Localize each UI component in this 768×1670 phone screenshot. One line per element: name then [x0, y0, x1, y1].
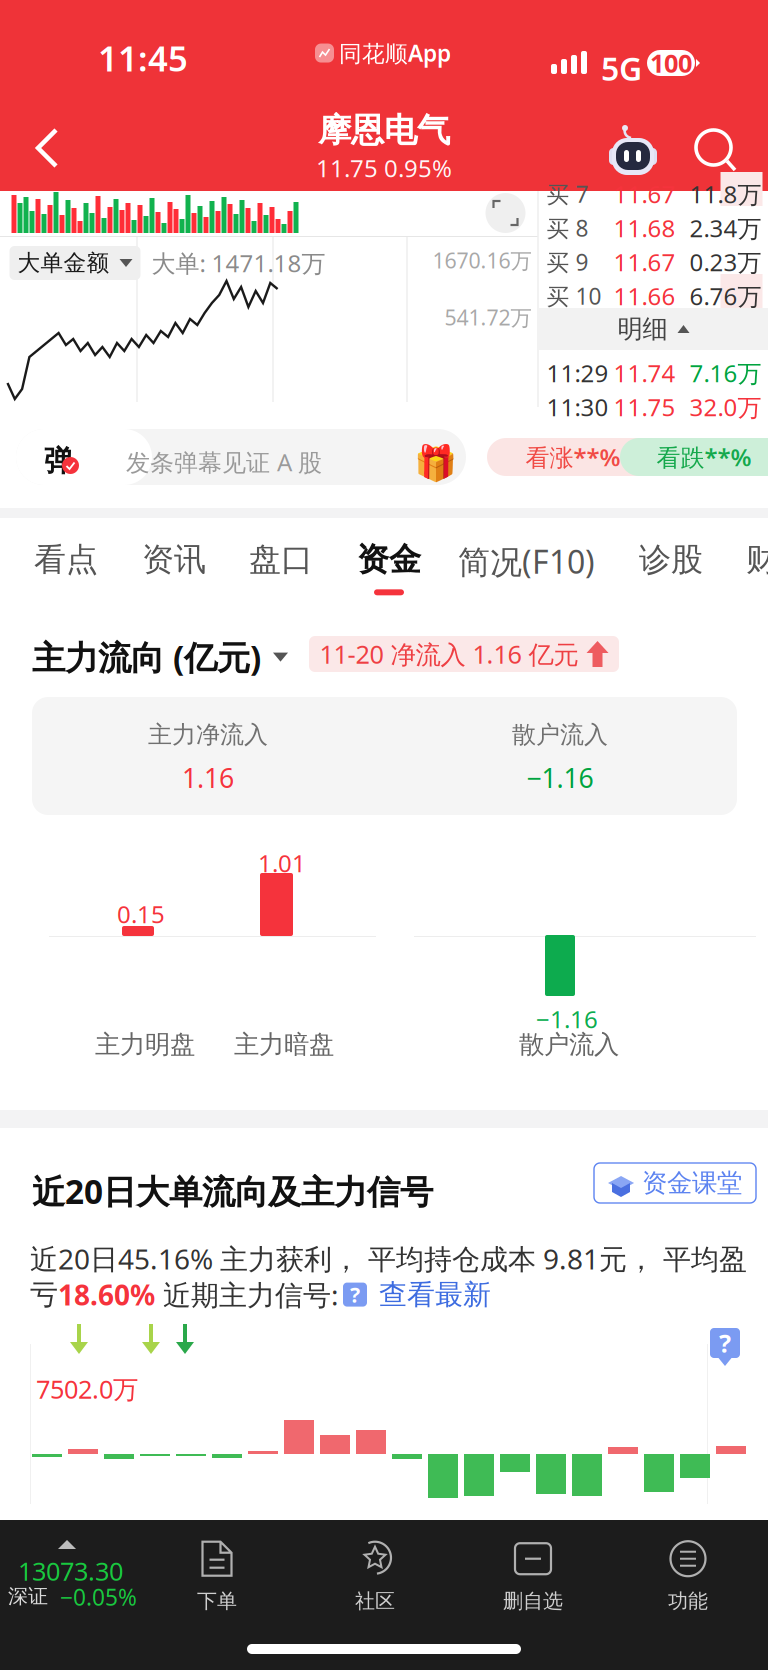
staticText: 11.75 0.95% — [316, 152, 452, 184]
staticText: 2.34万 — [689, 212, 761, 244]
button[interactable]: 资讯 — [136, 530, 212, 605]
button[interactable]: 11-20 净流入 1.16 亿元 — [309, 636, 619, 672]
staticText: 明细 — [617, 313, 667, 344]
button[interactable]: 看点 — [28, 530, 104, 605]
staticText: 1.16 — [182, 760, 234, 795]
staticText: 看跌**% — [656, 441, 751, 473]
button[interactable]: 智能助手 — [609, 124, 657, 176]
staticText: −0.05% — [60, 1582, 137, 1612]
staticText: 13073.30 — [18, 1554, 123, 1588]
button[interactable]: 社区 — [300, 1532, 450, 1620]
staticText: 买 7 — [546, 179, 588, 209]
button[interactable]: 主力流向 (亿元) — [32, 629, 288, 685]
staticText: 11.66 — [613, 280, 675, 312]
staticText: 541.72万 — [444, 303, 531, 331]
staticText: 财 — [746, 540, 768, 579]
staticText: 11:30 — [546, 391, 608, 423]
button[interactable]: 看跌**% — [620, 438, 768, 476]
staticText: 看点 — [34, 540, 98, 579]
staticText: −1.16 — [536, 1003, 598, 1035]
staticText: 11.67 — [613, 178, 675, 210]
staticText: 0.15 — [117, 898, 165, 930]
staticText: 100 — [650, 46, 692, 80]
button[interactable]: 删自选 — [458, 1532, 608, 1620]
staticText: 资讯 — [142, 540, 206, 579]
staticText: 删自选 — [503, 1589, 563, 1613]
staticText: 资金课堂 — [642, 1167, 742, 1198]
staticText: 散户流入 — [512, 720, 608, 749]
staticText: 6.76万 — [689, 280, 761, 312]
staticText: 买 10 — [546, 281, 601, 311]
button[interactable]: 说明 — [707, 1326, 743, 1368]
staticText: 5G — [601, 47, 642, 89]
staticText: 查看最新 — [379, 1277, 491, 1312]
staticText: 社区 — [355, 1589, 395, 1613]
staticText: 买 8 — [546, 213, 588, 243]
staticText: 11.75 — [613, 391, 675, 423]
button[interactable]: 大单金额 — [9, 246, 140, 280]
staticText: 11.67 — [613, 246, 675, 278]
staticText: 主力明盘 — [95, 1029, 195, 1060]
staticText: 近期主力信号: — [155, 1276, 339, 1313]
button[interactable]: 下单 — [142, 1532, 292, 1620]
staticText: 主力流向 (亿元) — [32, 635, 261, 679]
staticText: 功能 — [668, 1589, 708, 1613]
button[interactable]: 简况(F10) — [452, 530, 601, 608]
button[interactable]: 资金 — [351, 530, 427, 605]
button[interactable]: 13073.30 — [0, 1528, 160, 1624]
staticText: 资金 — [357, 540, 421, 579]
staticText: 摩恩电气 — [318, 110, 450, 151]
staticText: 发条弹幕见证 A 股 — [126, 446, 322, 478]
staticText: 1670.16万 — [432, 246, 531, 274]
button[interactable]: 搜索 — [696, 130, 738, 172]
staticText: 看涨**% — [525, 441, 620, 473]
staticText: 11-20 净流入 1.16 亿元 — [319, 637, 578, 671]
button[interactable]: 返回 — [13, 109, 81, 187]
button[interactable]: 财 — [740, 530, 768, 605]
staticText: 大单: 1471.18万 — [151, 247, 325, 279]
staticText: 32.0万 — [689, 391, 761, 423]
button[interactable]: 功能 — [613, 1532, 763, 1620]
staticText: 弹 — [44, 443, 73, 479]
staticText: ? — [719, 1326, 731, 1360]
staticText: 散户流入 — [519, 1029, 619, 1060]
staticText: 大单金额 — [17, 249, 109, 277]
staticText: 11:29 — [546, 357, 608, 389]
staticText: 亏 — [30, 1277, 58, 1312]
button[interactable]: 诊股 — [633, 530, 709, 605]
button[interactable]: 资金课堂 — [594, 1163, 756, 1203]
staticText: 11.74 — [613, 357, 675, 389]
staticText: 🎁 — [414, 443, 457, 483]
staticText: 近20日大单流向及主力信号 — [32, 1169, 433, 1213]
staticText: 同花顺App — [339, 38, 451, 68]
staticText: 近20日45.16% 主力获利， 平均持仓成本 9.81元， 平均盈 — [30, 1240, 747, 1277]
staticText: 7.16万 — [689, 357, 761, 389]
button[interactable]: 看涨**% — [487, 438, 659, 476]
button[interactable]: 全屏 — [477, 189, 533, 237]
staticText: 1.01 — [258, 847, 306, 879]
staticText: 深证 — [8, 1584, 48, 1609]
staticText: ? — [350, 1280, 360, 1309]
button[interactable]: 查看最新 — [367, 1277, 491, 1312]
button[interactable]: 弹 — [16, 429, 466, 485]
staticText: 简况(F10) — [458, 540, 595, 582]
staticText: 主力净流入 — [148, 720, 268, 749]
staticText: 11.8万 — [689, 178, 761, 210]
staticText: 7502.0万 — [36, 1372, 138, 1406]
staticText: 下单 — [197, 1589, 237, 1613]
staticText: 18.60% — [58, 1276, 155, 1313]
staticText: 11.68 — [613, 212, 675, 244]
staticText: 诊股 — [639, 540, 703, 579]
staticText: 买 9 — [546, 247, 588, 277]
staticText: 0.23万 — [689, 246, 761, 278]
staticText: −1.16 — [526, 760, 593, 795]
staticText: 11:45 — [98, 35, 188, 81]
staticText: 盘口 — [249, 540, 313, 579]
button[interactable]: 盘口 — [243, 530, 319, 605]
staticText: 主力暗盘 — [234, 1029, 334, 1060]
